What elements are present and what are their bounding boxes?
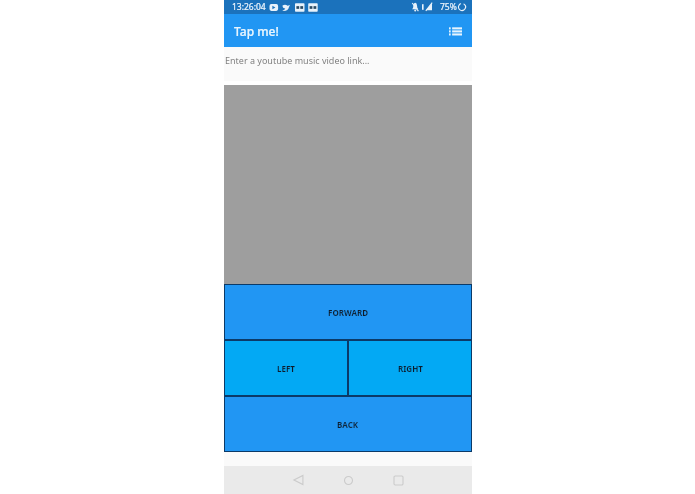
button[interactable]: Playlist — [445, 21, 465, 41]
button[interactable]: RIGHT — [349, 341, 471, 395]
button[interactable]: FORWARD — [225, 285, 471, 339]
button[interactable]: LEFT — [225, 341, 347, 395]
button[interactable]: Back — [286, 468, 310, 492]
staticText: BACK — [337, 419, 359, 430]
staticText: Tap me! — [234, 23, 279, 39]
button[interactable]: BACK — [225, 397, 471, 451]
staticText: 13:26:04 — [232, 1, 266, 13]
button[interactable]: Recent apps — [386, 468, 410, 492]
button[interactable]: Home — [336, 468, 360, 492]
staticText: RIGHT — [398, 363, 423, 374]
staticText: Enter a youtube music video link... — [225, 54, 370, 66]
staticText: FORWARD — [328, 307, 369, 318]
staticText: 75% — [440, 1, 457, 13]
staticText: LEFT — [277, 363, 295, 374]
